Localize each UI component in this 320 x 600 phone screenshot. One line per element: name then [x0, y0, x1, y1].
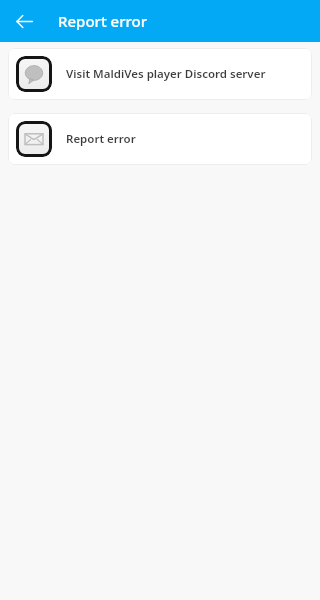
staticText: Visit MaldiVes player Discord server — [66, 66, 266, 82]
button[interactable]: Visit MaldiVes player Discord server — [8, 48, 312, 100]
staticText: Report error — [58, 11, 148, 31]
button[interactable]: Back — [8, 5, 40, 37]
staticText: Report error — [66, 131, 136, 147]
button[interactable]: Report error — [8, 113, 312, 165]
